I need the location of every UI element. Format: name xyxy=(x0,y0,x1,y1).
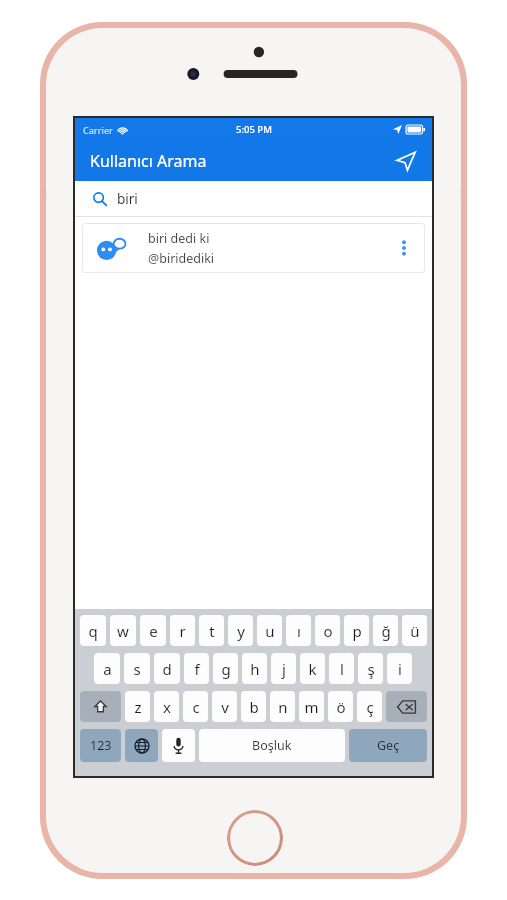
button[interactable]: i xyxy=(387,653,412,684)
button[interactable]: x xyxy=(154,691,179,722)
button[interactable]: q xyxy=(80,615,106,646)
button[interactable]: Backspace xyxy=(386,691,427,722)
staticText: Boşluk xyxy=(252,737,292,754)
staticText: c xyxy=(192,697,200,717)
button[interactable]: m xyxy=(299,691,324,722)
button[interactable]: ğ xyxy=(373,615,398,646)
staticText: l xyxy=(340,659,344,679)
button[interactable]: z xyxy=(125,691,150,722)
button[interactable]: k xyxy=(300,653,325,684)
button[interactable]: s xyxy=(124,653,150,684)
staticText: d xyxy=(162,659,172,679)
button[interactable]: Voice input xyxy=(162,729,195,762)
staticText: i xyxy=(398,659,402,679)
staticText: w xyxy=(117,621,129,641)
button[interactable]: y xyxy=(228,615,253,646)
staticText: a xyxy=(103,659,112,679)
button[interactable]: w xyxy=(110,615,136,646)
staticText: ı xyxy=(297,621,301,641)
button[interactable]: r xyxy=(170,615,195,646)
staticText: biri xyxy=(117,190,138,208)
staticText: ü xyxy=(410,621,420,641)
staticText: v xyxy=(221,697,229,717)
staticText: z xyxy=(134,697,142,717)
staticText: x xyxy=(163,697,171,717)
staticText: Kullanıcı Arama xyxy=(90,150,207,172)
staticText: t xyxy=(209,621,215,641)
button[interactable]: Change keyboard language xyxy=(125,729,158,762)
button[interactable]: f xyxy=(184,653,209,684)
staticText: y xyxy=(237,621,245,641)
button[interactable]: d xyxy=(154,653,180,684)
staticText: p xyxy=(352,621,362,641)
staticText: f xyxy=(194,659,200,679)
button[interactable]: ü xyxy=(402,615,427,646)
button[interactable]: Shift xyxy=(80,691,121,722)
button[interactable]: Boşluk xyxy=(199,729,345,762)
button[interactable]: h xyxy=(242,653,267,684)
staticText: ö xyxy=(336,697,346,717)
button[interactable]: c xyxy=(183,691,208,722)
staticText: Carrier xyxy=(83,124,113,136)
staticText: j xyxy=(282,659,286,679)
button[interactable]: Send xyxy=(390,145,422,177)
staticText: ş xyxy=(367,659,375,679)
button[interactable]: biri xyxy=(75,181,432,216)
button[interactable]: b xyxy=(241,691,266,722)
button[interactable]: ı xyxy=(286,615,311,646)
button[interactable]: e xyxy=(140,615,166,646)
button[interactable]: Home xyxy=(227,810,283,866)
button[interactable]: Geç xyxy=(349,729,427,762)
staticText: q xyxy=(88,621,98,641)
button[interactable]: biri dedi ki xyxy=(82,223,425,273)
staticText: r xyxy=(179,621,186,641)
button[interactable]: ç xyxy=(357,691,382,722)
staticText: h xyxy=(250,659,260,679)
button[interactable]: t xyxy=(199,615,224,646)
staticText: s xyxy=(133,659,141,679)
button[interactable]: ş xyxy=(358,653,383,684)
button[interactable]: u xyxy=(257,615,282,646)
staticText: Geç xyxy=(377,737,400,754)
staticText: biri dedi ki xyxy=(148,230,210,247)
staticText: o xyxy=(323,621,333,641)
button[interactable]: a xyxy=(94,653,120,684)
button[interactable]: 123 xyxy=(80,729,121,762)
button[interactable]: g xyxy=(213,653,238,684)
staticText: 123 xyxy=(90,737,112,754)
staticText: ç xyxy=(366,697,374,717)
staticText: k xyxy=(308,659,317,679)
staticText: e xyxy=(149,621,158,641)
staticText: m xyxy=(304,697,319,717)
button[interactable]: o xyxy=(315,615,340,646)
staticText: u xyxy=(265,621,275,641)
button[interactable]: v xyxy=(212,691,237,722)
staticText: b xyxy=(249,697,259,717)
button[interactable]: p xyxy=(344,615,369,646)
button[interactable]: l xyxy=(329,653,354,684)
button[interactable]: More options xyxy=(389,227,419,269)
staticText: g xyxy=(221,659,231,679)
button[interactable]: ö xyxy=(328,691,353,722)
button[interactable]: n xyxy=(270,691,295,722)
staticText: ğ xyxy=(381,621,391,641)
staticText: @biridediki xyxy=(148,250,215,267)
staticText: n xyxy=(278,697,288,717)
staticText: 5:05 PM xyxy=(236,123,272,136)
button[interactable]: j xyxy=(271,653,296,684)
